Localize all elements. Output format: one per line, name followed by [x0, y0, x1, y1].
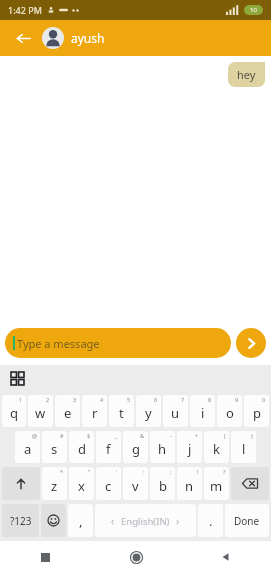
button[interactable]: _	[96, 431, 121, 463]
button[interactable]: .	[198, 504, 223, 537]
staticText: 7	[181, 396, 185, 403]
staticText: z	[51, 477, 58, 495]
button[interactable]: 6	[136, 395, 161, 427]
staticText: #	[60, 432, 64, 439]
button[interactable]: ?123	[2, 504, 39, 537]
staticText: ‹	[111, 514, 115, 528]
staticText: 2	[46, 396, 50, 403]
staticText: :	[143, 468, 145, 475]
staticText: d	[78, 440, 86, 458]
staticText: n	[185, 477, 194, 495]
button[interactable]: Space	[95, 504, 196, 537]
button[interactable]: Recents	[0, 541, 91, 573]
button[interactable]: -	[150, 431, 175, 463]
button[interactable]: Emoji	[41, 504, 66, 537]
staticText: b	[159, 477, 167, 495]
staticText: hey	[237, 67, 256, 82]
button[interactable]: Send	[236, 328, 266, 358]
staticText: ›	[176, 514, 180, 528]
staticText: c	[105, 477, 112, 495]
staticText: 1	[19, 396, 23, 403]
staticText: $	[87, 432, 91, 439]
button[interactable]: @	[15, 431, 40, 463]
button[interactable]: Apps	[8, 369, 26, 387]
staticText: ,	[79, 512, 83, 530]
staticText: (	[224, 432, 226, 439]
button[interactable]: 0	[244, 395, 269, 427]
button[interactable]: :	[123, 467, 148, 500]
staticText: s	[51, 440, 58, 458]
button[interactable]: 4	[82, 395, 107, 427]
button[interactable]: (	[204, 431, 229, 463]
staticText: q	[10, 404, 18, 422]
button[interactable]: 3	[55, 395, 80, 427]
staticText: a	[24, 440, 32, 458]
button[interactable]: Shift	[2, 467, 40, 500]
staticText: ?	[223, 468, 226, 475]
staticText: *	[60, 468, 64, 475]
button[interactable]: Type a message	[5, 328, 231, 358]
button[interactable]: ,	[68, 504, 93, 537]
button[interactable]: &	[123, 431, 148, 463]
staticText: o	[226, 404, 234, 422]
staticText: "	[88, 468, 91, 475]
button[interactable]: Back	[181, 541, 271, 573]
staticText: r	[92, 404, 98, 422]
staticText: -	[170, 432, 172, 439]
button[interactable]: hey	[228, 62, 265, 87]
staticText: +	[195, 432, 199, 439]
staticText: 8	[208, 396, 212, 403]
staticText: '	[116, 468, 118, 475]
staticText: 9	[235, 396, 239, 403]
button[interactable]: 8	[190, 395, 215, 427]
staticText: y	[145, 404, 152, 422]
staticText: @	[32, 432, 37, 439]
button[interactable]: Home	[91, 541, 181, 573]
staticText: h	[158, 440, 167, 458]
staticText: t	[119, 404, 124, 422]
staticText: )	[251, 432, 253, 439]
staticText: ?123	[10, 514, 32, 528]
button[interactable]: !	[177, 467, 202, 500]
staticText: j	[188, 440, 192, 458]
button[interactable]: Back	[10, 25, 36, 51]
button[interactable]: Done	[225, 504, 269, 537]
staticText: ayush	[71, 30, 105, 46]
staticText: f	[106, 440, 111, 458]
button[interactable]: 1	[2, 395, 26, 427]
button[interactable]: 2	[28, 395, 53, 427]
staticText: Type a message	[17, 336, 100, 351]
button[interactable]: )	[231, 431, 256, 463]
staticText: 6	[154, 396, 158, 403]
button[interactable]: *	[42, 467, 67, 500]
staticText: u	[171, 404, 180, 422]
staticText: .	[209, 512, 213, 530]
staticText: p	[253, 404, 261, 422]
button[interactable]: 5	[109, 395, 134, 427]
button[interactable]: 7	[163, 395, 188, 427]
button[interactable]: +	[177, 431, 202, 463]
button[interactable]: ?	[204, 467, 229, 500]
staticText: e	[64, 404, 72, 422]
button[interactable]: ;	[150, 467, 175, 500]
button[interactable]: #	[42, 431, 67, 463]
staticText: ;	[170, 468, 172, 475]
staticText: l	[242, 440, 246, 458]
staticText: _	[115, 432, 118, 439]
button[interactable]: Backspace	[231, 467, 269, 500]
button[interactable]: $	[69, 431, 94, 463]
button[interactable]: '	[96, 467, 121, 500]
staticText: w	[35, 404, 46, 422]
staticText: 5	[127, 396, 131, 403]
staticText: k	[213, 440, 220, 458]
staticText: m	[210, 477, 223, 495]
button[interactable]: Profile photo	[42, 27, 64, 49]
staticText: 3	[73, 396, 77, 403]
button[interactable]: "	[69, 467, 94, 500]
button[interactable]: 9	[217, 395, 242, 427]
staticText: Done	[234, 514, 260, 528]
staticText: 0	[262, 396, 266, 403]
staticText: v	[132, 477, 139, 495]
staticText: x	[78, 477, 85, 495]
staticText: 1:42 PM	[8, 4, 42, 16]
